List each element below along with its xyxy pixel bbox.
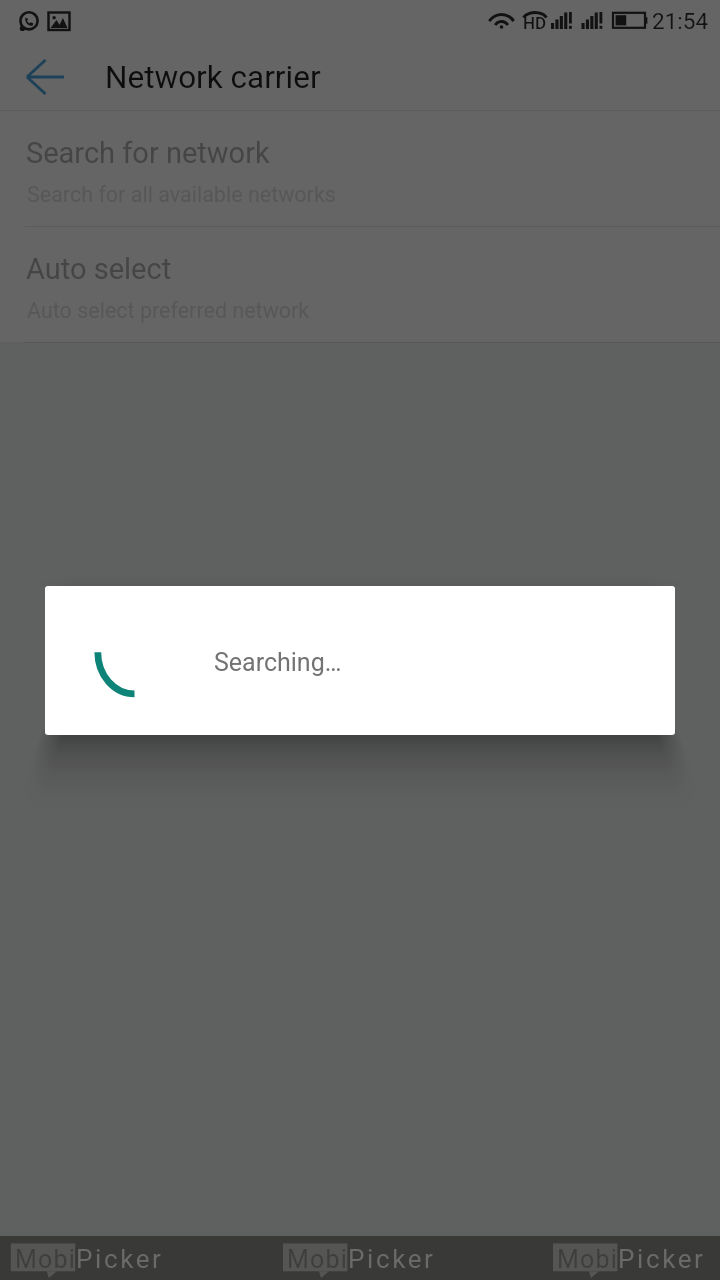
staticText: Picker <box>348 1244 436 1274</box>
button[interactable]: Navigate up <box>17 49 73 105</box>
button[interactable]: Search for network <box>0 111 720 226</box>
staticText: Mobi <box>287 1245 349 1274</box>
button[interactable]: Auto select <box>0 227 720 342</box>
staticText: Picker <box>76 1244 164 1274</box>
staticText: Auto select preferred network <box>27 298 310 323</box>
staticText: Searching… <box>214 648 342 677</box>
button[interactable]: Dismiss dialog <box>0 0 720 1280</box>
staticText: Picker <box>618 1244 706 1274</box>
staticText: Mobi <box>15 1245 77 1274</box>
staticText: Auto select <box>26 252 172 286</box>
staticText: Search for network <box>26 136 270 170</box>
staticText: Network carrier <box>105 59 321 96</box>
staticText: HD <box>523 13 547 33</box>
staticText: Search for all available networks <box>27 182 336 207</box>
staticText: Mobi <box>557 1245 619 1274</box>
staticText: 21:54 <box>652 8 709 34</box>
